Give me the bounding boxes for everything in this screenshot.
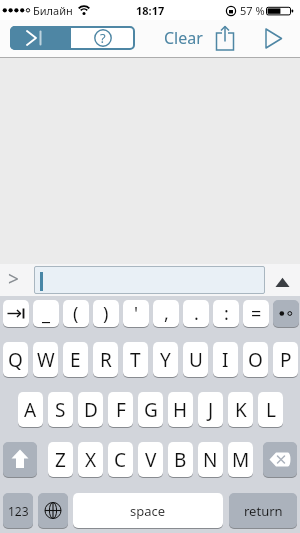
staticText: O xyxy=(248,347,263,373)
button[interactable]: Z xyxy=(48,442,73,477)
button[interactable]: ) xyxy=(93,300,119,327)
button[interactable]: , xyxy=(153,300,179,327)
button[interactable]: B xyxy=(168,442,193,477)
staticText: > xyxy=(8,266,19,292)
button[interactable]: N xyxy=(198,442,223,477)
button[interactable]: _ xyxy=(33,300,59,327)
staticText: ) xyxy=(103,301,109,326)
staticText: : xyxy=(224,301,229,326)
button[interactable]: return xyxy=(229,493,297,528)
staticText: F xyxy=(116,397,126,423)
button[interactable]: H xyxy=(168,392,193,427)
button[interactable] xyxy=(263,442,297,477)
button[interactable]: T xyxy=(123,342,148,377)
staticText: , xyxy=(164,301,169,326)
staticText: Билайн xyxy=(33,3,73,18)
staticText: Clear xyxy=(164,27,203,49)
staticText: H xyxy=(173,397,188,423)
button[interactable]: J xyxy=(198,392,223,427)
staticText: ? xyxy=(100,29,106,47)
button[interactable]: D xyxy=(78,392,103,427)
button[interactable]: : xyxy=(213,300,239,327)
staticText: = xyxy=(251,301,262,326)
staticText: ( xyxy=(73,301,79,326)
button[interactable]: 123 xyxy=(3,493,33,528)
staticText: K xyxy=(235,397,247,423)
button[interactable]: I xyxy=(213,342,238,377)
button[interactable]: ? xyxy=(71,26,135,50)
button[interactable]: X xyxy=(78,442,103,477)
button[interactable]: A xyxy=(18,392,43,427)
staticText: return xyxy=(244,502,283,520)
staticText: D xyxy=(84,397,98,423)
staticText: _ xyxy=(42,301,50,326)
staticText: V xyxy=(145,447,157,473)
staticText: Y xyxy=(160,347,171,373)
staticText: I xyxy=(222,347,229,373)
staticText: B xyxy=(174,447,187,473)
button[interactable] xyxy=(3,300,29,327)
staticText: A xyxy=(24,397,37,423)
button[interactable]: V xyxy=(138,442,163,477)
button[interactable] xyxy=(260,24,288,52)
staticText: S xyxy=(55,397,66,423)
staticText: J xyxy=(208,397,214,423)
staticText: R xyxy=(100,347,112,373)
button[interactable]: C xyxy=(108,442,133,477)
staticText: 57 % xyxy=(240,3,265,18)
staticText: G xyxy=(144,397,158,423)
button[interactable]: U xyxy=(183,342,208,377)
button[interactable]: ' xyxy=(123,300,149,327)
staticText: T xyxy=(130,347,141,373)
staticText: space xyxy=(130,502,166,520)
button[interactable]: E xyxy=(63,342,88,377)
button[interactable]: S xyxy=(48,392,73,427)
button[interactable] xyxy=(3,442,37,477)
staticText: N xyxy=(203,447,218,473)
button[interactable]: Y xyxy=(153,342,178,377)
button[interactable] xyxy=(212,23,240,55)
button[interactable] xyxy=(270,272,295,296)
button[interactable]: R xyxy=(93,342,118,377)
staticText: Q xyxy=(8,347,23,373)
staticText: M xyxy=(232,447,250,473)
button[interactable]: K xyxy=(228,392,253,427)
button[interactable]: . xyxy=(183,300,209,327)
button[interactable]: F xyxy=(108,392,133,427)
button[interactable]: Clear xyxy=(160,24,206,52)
button[interactable] xyxy=(38,493,68,528)
button[interactable] xyxy=(10,26,71,50)
staticText: W xyxy=(37,347,55,373)
button[interactable]: L xyxy=(258,392,283,427)
button[interactable]: M xyxy=(228,442,253,477)
button[interactable]: Q xyxy=(3,342,28,377)
button[interactable]: ( xyxy=(63,300,89,327)
staticText: X xyxy=(85,447,97,473)
button[interactable]: G xyxy=(138,392,163,427)
staticText: C xyxy=(114,447,127,473)
button[interactable] xyxy=(34,266,265,294)
staticText: ' xyxy=(134,301,139,326)
staticText: Z xyxy=(55,447,66,473)
button[interactable]: space xyxy=(73,493,223,528)
staticText: . xyxy=(194,301,199,326)
staticText: 18:17 xyxy=(136,3,165,18)
button[interactable]: = xyxy=(243,300,269,327)
staticText: E xyxy=(70,347,81,373)
button[interactable] xyxy=(273,300,299,327)
staticText: P xyxy=(280,347,292,373)
button[interactable]: O xyxy=(243,342,268,377)
button[interactable]: P xyxy=(273,342,298,377)
staticText: 123 xyxy=(8,503,29,519)
staticText: L xyxy=(266,397,276,423)
button[interactable]: W xyxy=(33,342,58,377)
staticText: U xyxy=(189,347,203,373)
